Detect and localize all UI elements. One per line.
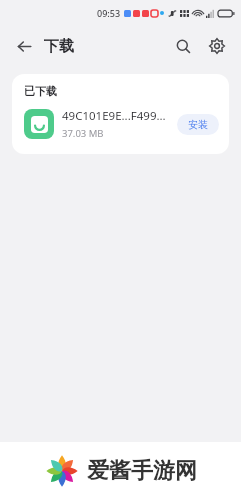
button[interactable]: 49C101E9E...F4993.apk <box>12 108 229 140</box>
button[interactable]: 安装 <box>177 114 219 135</box>
staticText: 09:53 <box>97 7 121 19</box>
staticText: 爱酱手游网 <box>87 457 197 485</box>
staticText: 已下载 <box>24 84 57 98</box>
staticText: 49C101E9E...F4993.apk <box>62 108 171 124</box>
button[interactable]: Search <box>169 32 197 60</box>
staticText: 37.03 MB <box>62 127 104 140</box>
button[interactable]: Back <box>10 32 38 60</box>
staticText: 安装 <box>188 118 208 131</box>
button[interactable]: Settings <box>203 32 231 60</box>
staticText: 下载 <box>44 37 74 56</box>
